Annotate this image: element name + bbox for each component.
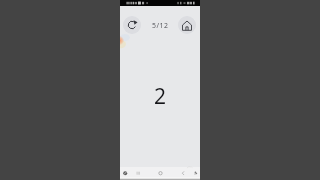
- button[interactable]: Home: [178, 16, 196, 34]
- staticText: 2: [154, 82, 167, 111]
- button[interactable]: Refresh: [123, 16, 141, 34]
- staticText: 5/12: [152, 21, 169, 30]
